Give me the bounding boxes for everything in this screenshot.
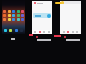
button[interactable] — [32, 0, 52, 34]
button[interactable] — [33, 13, 51, 18]
button[interactable] — [55, 2, 64, 4]
button[interactable] — [60, 0, 81, 34]
button[interactable] — [2, 0, 25, 34]
